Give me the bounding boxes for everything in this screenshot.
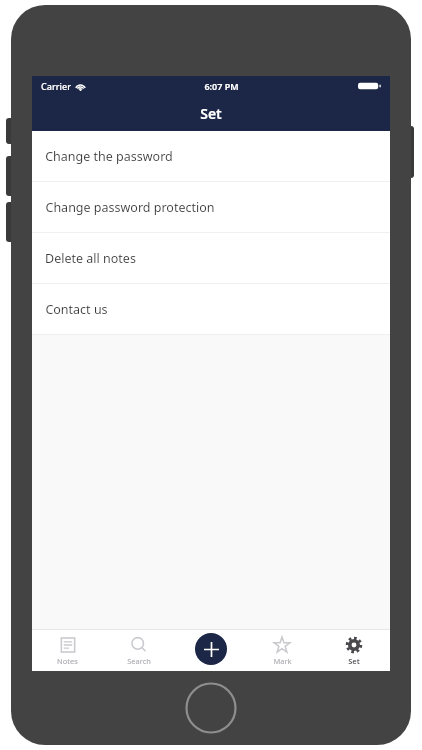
- staticText: Notes: [57, 656, 78, 666]
- staticText: Carrier: [41, 80, 71, 92]
- staticText: 6:07 PM: [204, 80, 239, 92]
- button[interactable]: Search: [103, 630, 174, 671]
- button[interactable]: Notes: [32, 630, 103, 671]
- staticText: Set: [200, 104, 222, 123]
- staticText: Change password protection: [45, 199, 215, 216]
- button[interactable]: Contact us: [32, 284, 390, 334]
- button[interactable]: Delete all notes: [32, 233, 390, 283]
- button[interactable]: Add note: [174, 630, 246, 671]
- button[interactable]: Set: [318, 630, 390, 671]
- other: Home: [185, 682, 237, 734]
- staticText: Contact us: [45, 301, 108, 318]
- staticText: Mark: [273, 656, 292, 666]
- staticText: Change the password: [45, 148, 173, 165]
- button[interactable]: Add: [195, 633, 227, 665]
- staticText: Set: [348, 656, 360, 666]
- button[interactable]: Change the password: [32, 131, 390, 181]
- button[interactable]: Mark: [246, 630, 318, 671]
- button[interactable]: Change password protection: [32, 182, 390, 232]
- staticText: Search: [127, 656, 151, 666]
- staticText: Delete all notes: [45, 250, 136, 267]
